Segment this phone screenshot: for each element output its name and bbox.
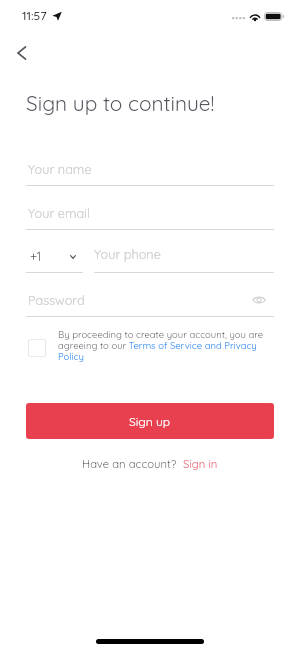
button[interactable]: Country code [26,245,83,267]
button[interactable]: Accept terms and conditions [28,339,46,357]
staticText: +1 [30,248,42,264]
staticText: Have an account? [82,457,177,471]
staticText: Your email [28,205,90,221]
button[interactable]: Your email [26,201,274,225]
staticText: Sign up to continue! [26,90,215,116]
button[interactable]: Show password [247,290,271,310]
button[interactable]: Your name [26,157,274,181]
staticText: Your name [28,161,92,177]
button[interactable]: Sign in [182,454,219,474]
staticText: By proceeding to create your account, yo… [58,328,266,363]
staticText: 11:57 [22,8,47,23]
staticText: Password [28,292,85,308]
button[interactable]: Back [6,38,36,68]
staticText: Sign up [129,414,171,429]
button[interactable]: Sign up [26,403,274,439]
staticText: Sign in [183,457,218,471]
button[interactable]: Password [26,288,274,312]
staticText: Your phone [94,246,161,262]
